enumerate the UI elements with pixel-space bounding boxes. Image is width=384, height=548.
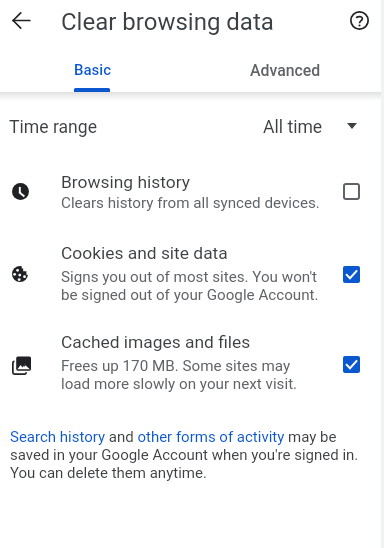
button[interactable]: Time range	[0, 101, 384, 151]
staticText: Basic	[74, 61, 112, 79]
staticText: Browsing history	[61, 172, 190, 192]
staticText: Cached images and files	[61, 332, 251, 352]
staticText: Signs you out of most sites. You won't	[61, 268, 318, 286]
staticText: be signed out of your Google Account.	[61, 286, 319, 304]
button[interactable]: Back	[6, 5, 37, 36]
button[interactable]: Browsing history	[0, 166, 384, 228]
staticText: All time	[263, 117, 323, 138]
staticText: Advanced	[250, 61, 321, 80]
button[interactable]: Help	[344, 5, 375, 36]
staticText: Search history and other forms of activi…	[10, 428, 372, 482]
staticText: Time range	[9, 117, 98, 138]
button[interactable]: Cookies and site data	[0, 238, 384, 317]
button[interactable]: Advanced	[192, 46, 384, 92]
button[interactable]: Cached images and files	[0, 327, 384, 406]
staticText: Clears history from all synced devices.	[61, 194, 320, 212]
staticText: Cookies and site data	[61, 243, 228, 263]
staticText: load more slowly on your next visit.	[61, 375, 298, 393]
staticText: Frees up 170 MB. Some sites may	[61, 357, 291, 375]
button[interactable]: Basic	[0, 46, 192, 92]
staticText: Clear browsing data	[61, 8, 274, 36]
